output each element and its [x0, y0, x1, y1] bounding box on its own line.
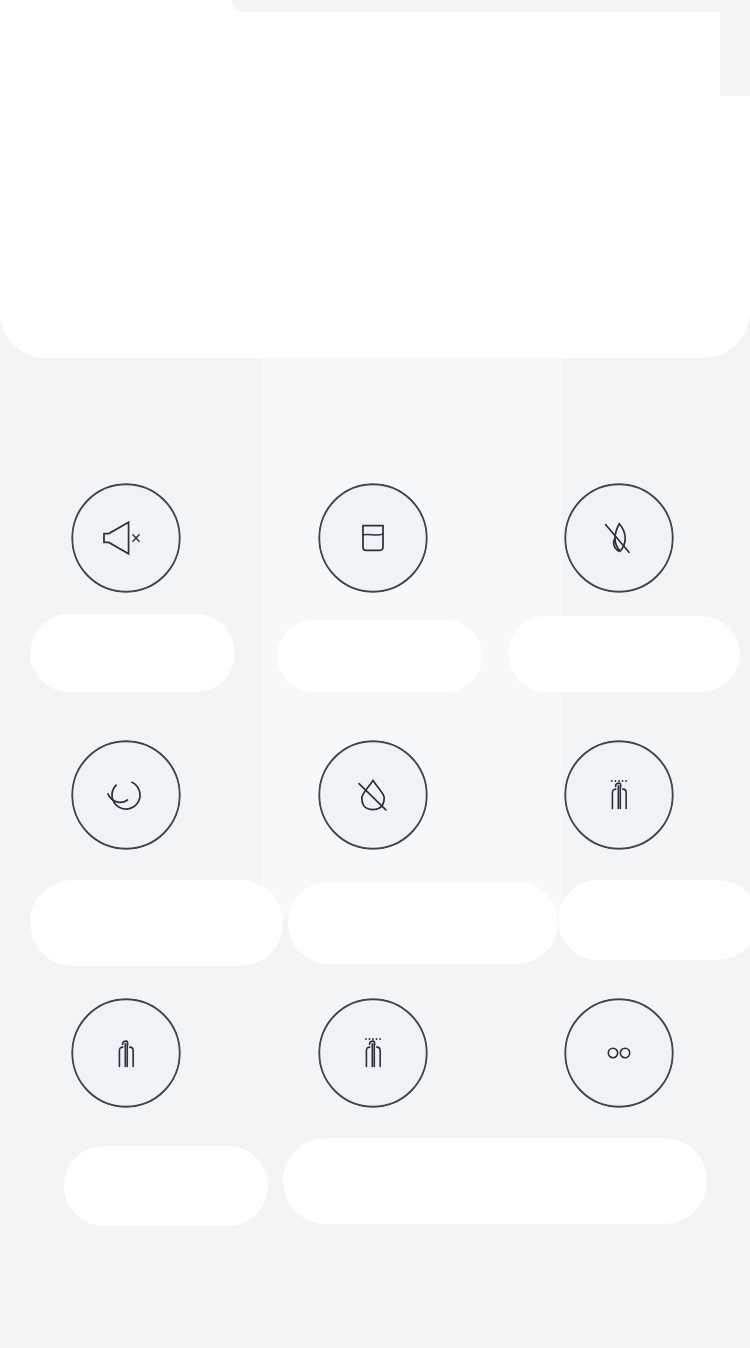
button[interactable]: Spray with mist [564, 740, 674, 850]
button[interactable]: Mute [71, 483, 181, 593]
button[interactable]: Spray [71, 998, 181, 1108]
button[interactable]: Night mode [71, 740, 181, 850]
button[interactable]: Spray with mist [318, 998, 428, 1108]
button[interactable]: Humidity off [318, 740, 428, 850]
button[interactable]: More [564, 998, 674, 1108]
button[interactable]: Water glass [318, 483, 428, 593]
button[interactable]: Heat off [564, 483, 674, 593]
